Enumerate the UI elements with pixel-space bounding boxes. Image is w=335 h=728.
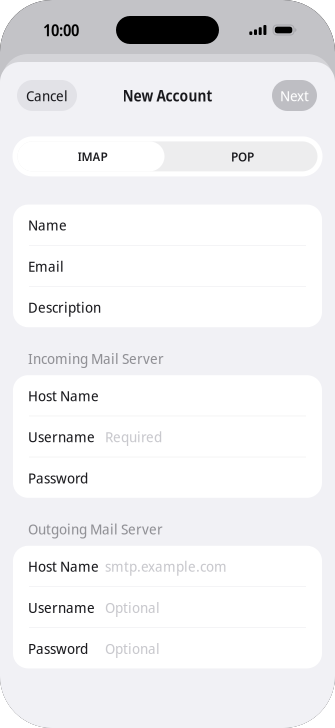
staticText: Description: [28, 297, 101, 317]
staticText: Username: [28, 426, 95, 447]
button[interactable]: Next: [272, 80, 317, 111]
staticText: New Account: [122, 85, 212, 106]
button[interactable]: POP: [167, 141, 317, 171]
staticText: Cancel: [26, 85, 68, 106]
button[interactable]: Host Name: [13, 546, 322, 586]
staticText: Next: [280, 85, 309, 106]
staticText: Password: [28, 467, 88, 488]
staticText: Optional: [105, 597, 160, 617]
button[interactable]: Username: [13, 587, 322, 627]
button[interactable]: Email: [13, 246, 322, 286]
button[interactable]: Username: [13, 416, 322, 457]
staticText: smtp.example.com: [105, 556, 227, 576]
staticText: Email: [28, 256, 64, 276]
staticText: IMAP: [77, 147, 107, 165]
staticText: Password: [28, 638, 88, 658]
staticText: Incoming Mail Server: [28, 348, 164, 368]
staticText: POP: [231, 147, 254, 165]
staticText: Outgoing Mail Server: [28, 519, 163, 539]
button[interactable]: Password: [13, 457, 322, 498]
button[interactable]: IMAP: [17, 141, 167, 171]
staticText: 10:00: [43, 19, 79, 41]
button[interactable]: Name: [13, 205, 322, 245]
staticText: Username: [28, 597, 95, 617]
staticText: Optional: [105, 638, 160, 658]
staticText: Required: [105, 426, 162, 447]
button[interactable]: Cancel: [17, 80, 77, 111]
button[interactable]: Password: [13, 628, 322, 668]
button[interactable]: Host Name: [13, 375, 322, 416]
staticText: Host Name: [28, 385, 99, 405]
button[interactable]: Description: [13, 287, 322, 327]
staticText: Name: [28, 215, 67, 235]
staticText: Host Name: [28, 556, 99, 576]
